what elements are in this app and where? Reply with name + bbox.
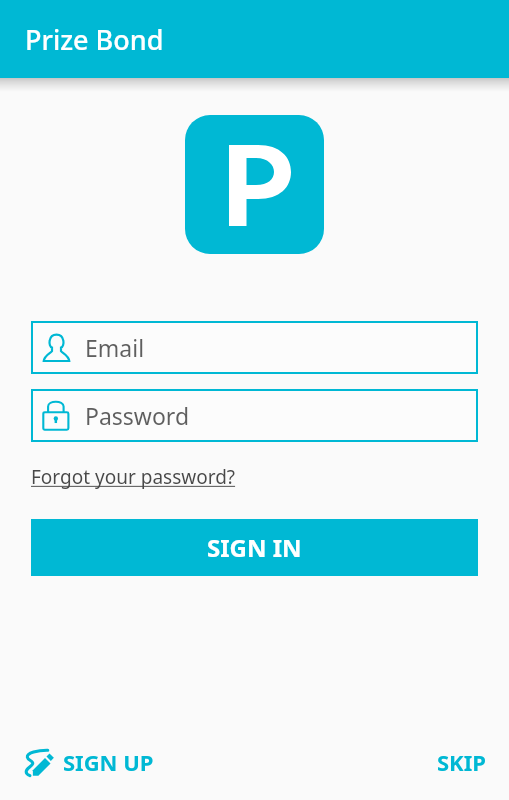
staticText: SIGN UP [63, 747, 154, 777]
button[interactable]: Skip [437, 747, 486, 777]
button[interactable]: Sign up [24, 747, 154, 777]
staticText: Prize Bond [25, 21, 164, 58]
staticText: SKIP [437, 747, 486, 777]
button[interactable]: Password [31, 389, 478, 442]
button[interactable]: Forgot your password? [31, 464, 236, 490]
staticText: Email [85, 332, 145, 363]
button[interactable]: Sign in [31, 519, 478, 576]
staticText: Password [85, 400, 190, 431]
staticText: SIGN IN [207, 531, 302, 564]
button[interactable]: Email [31, 321, 478, 374]
